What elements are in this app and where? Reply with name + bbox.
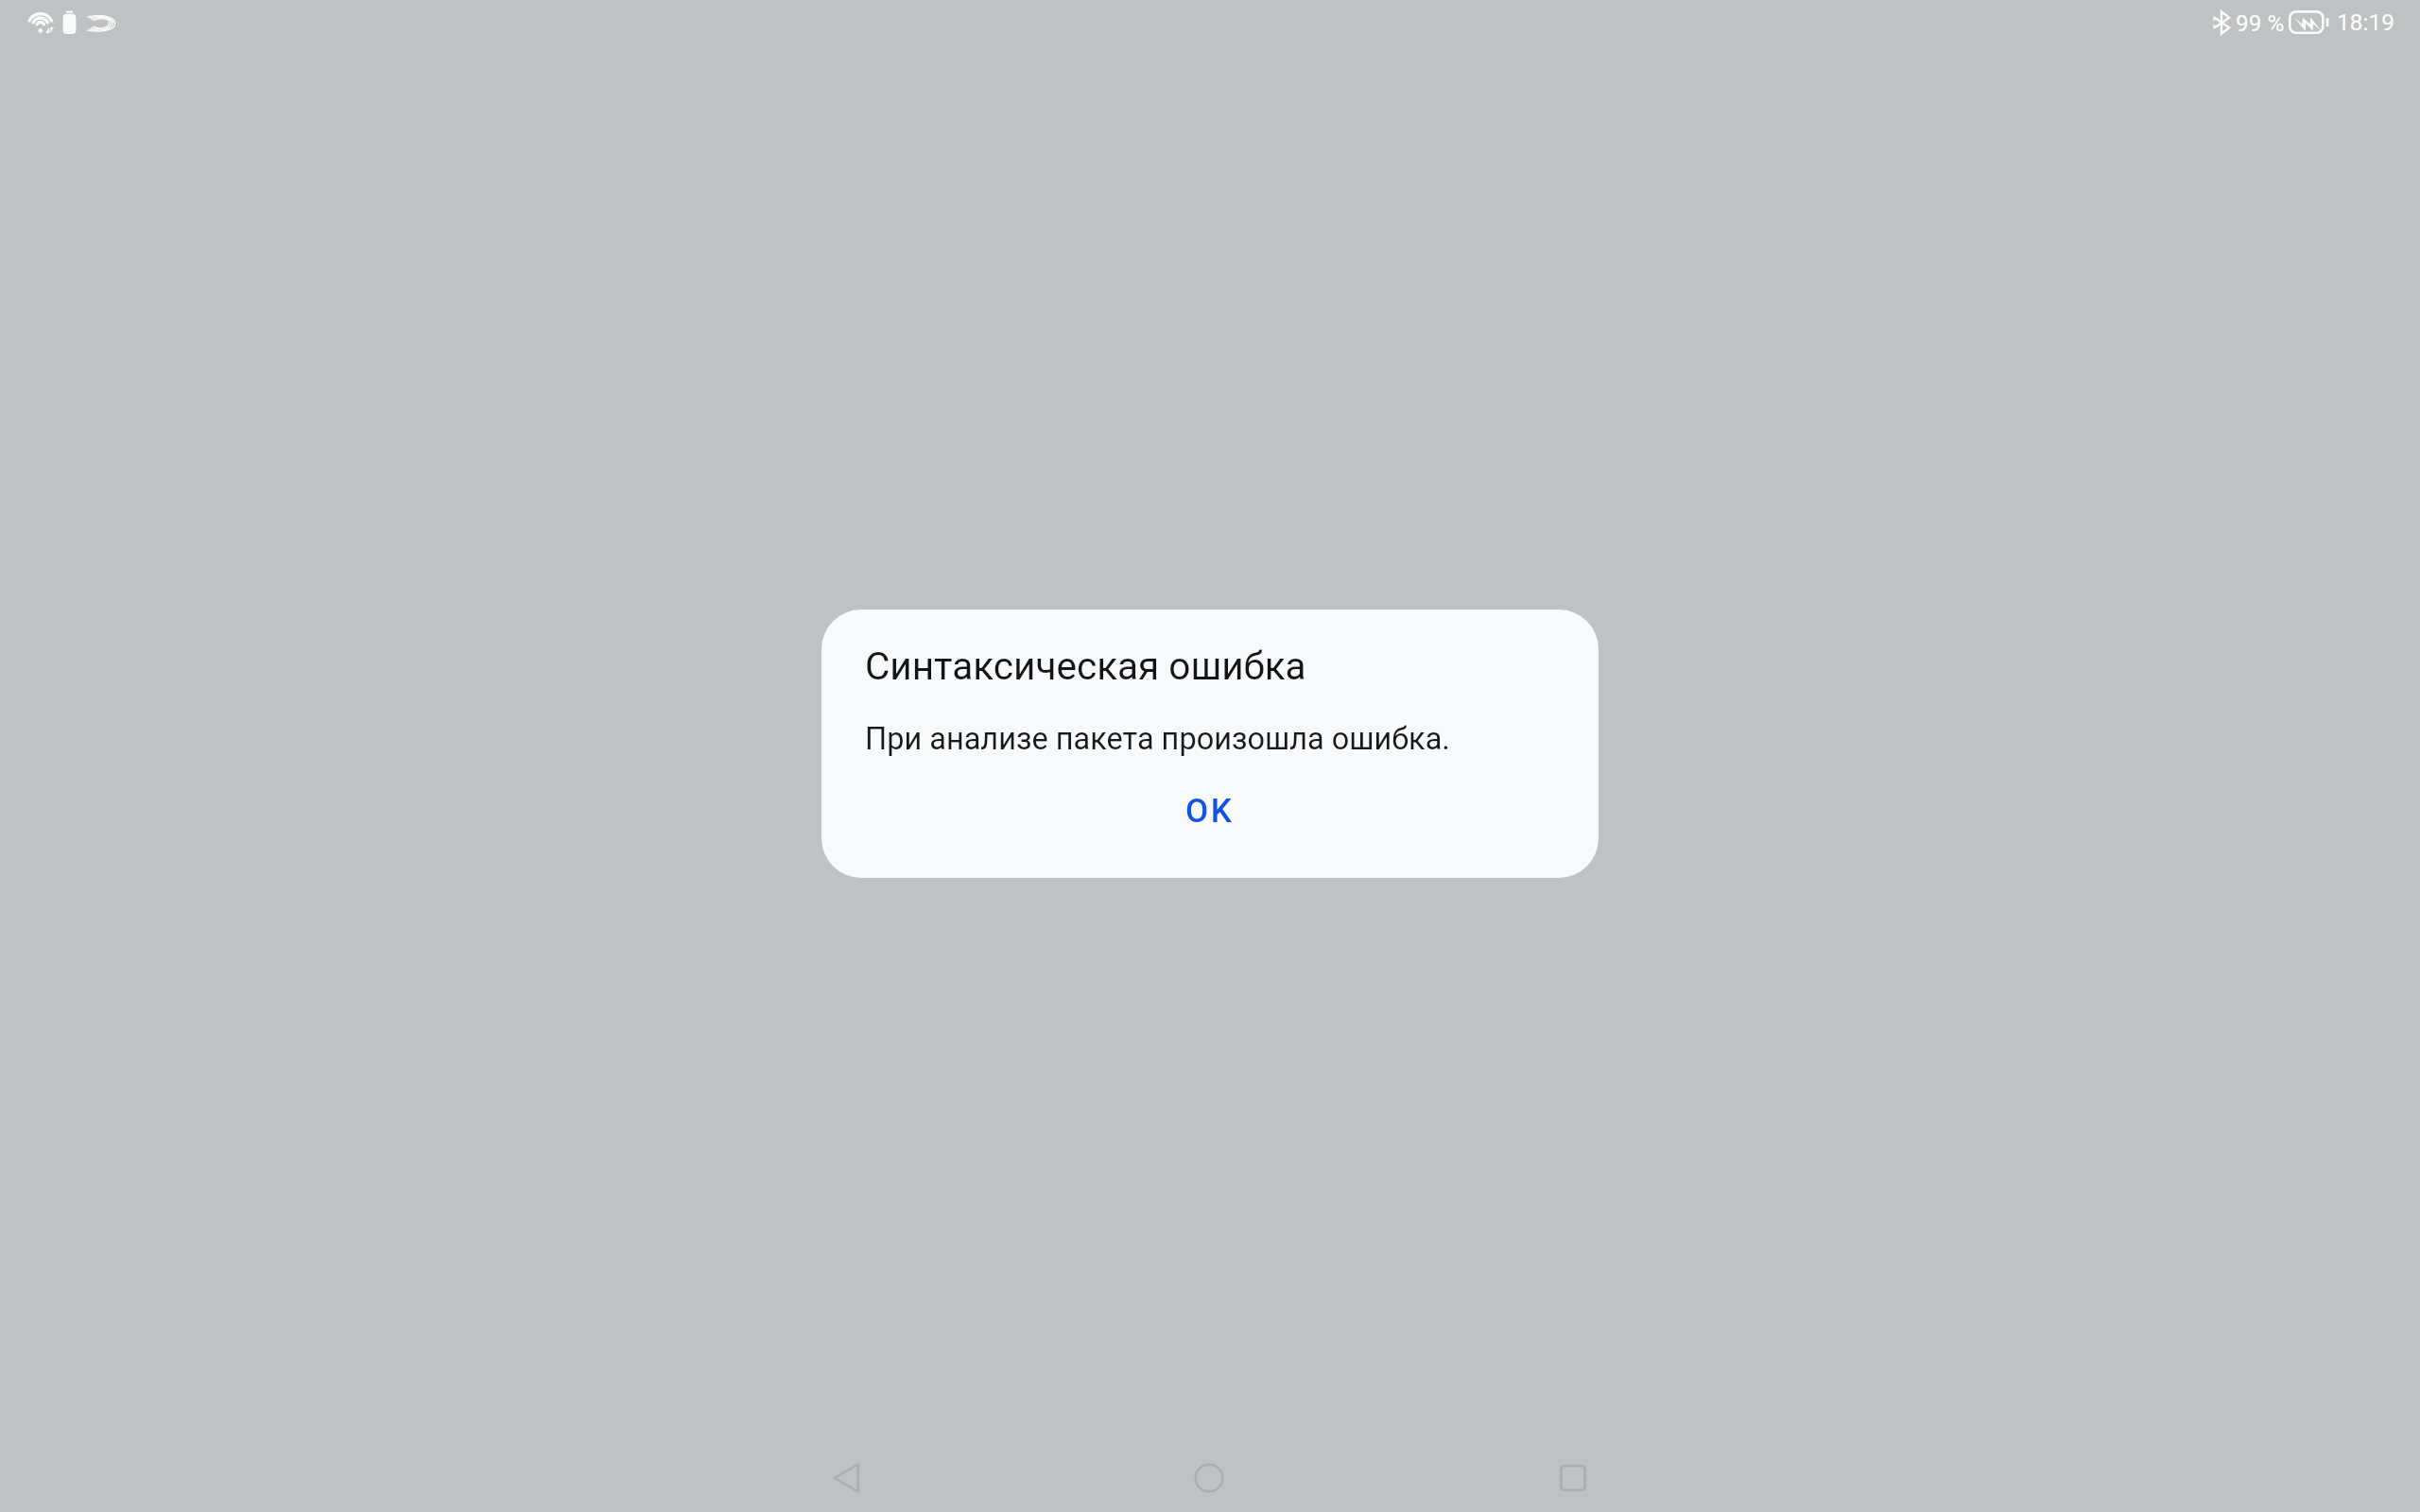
staticText: OK [1185, 792, 1235, 831]
other: Battery charging [2289, 10, 2330, 34]
staticText: 18:19 [2337, 9, 2395, 36]
staticText: Синтаксическая ошибка [865, 644, 1306, 688]
staticText: 99 % [2236, 9, 2285, 37]
button[interactable]: OK [1157, 775, 1263, 847]
staticText: При анализе пакета произошла ошибка. [865, 721, 1450, 757]
other: Wi-Fi [27, 9, 55, 34]
other: Bluetooth [2213, 10, 2231, 35]
